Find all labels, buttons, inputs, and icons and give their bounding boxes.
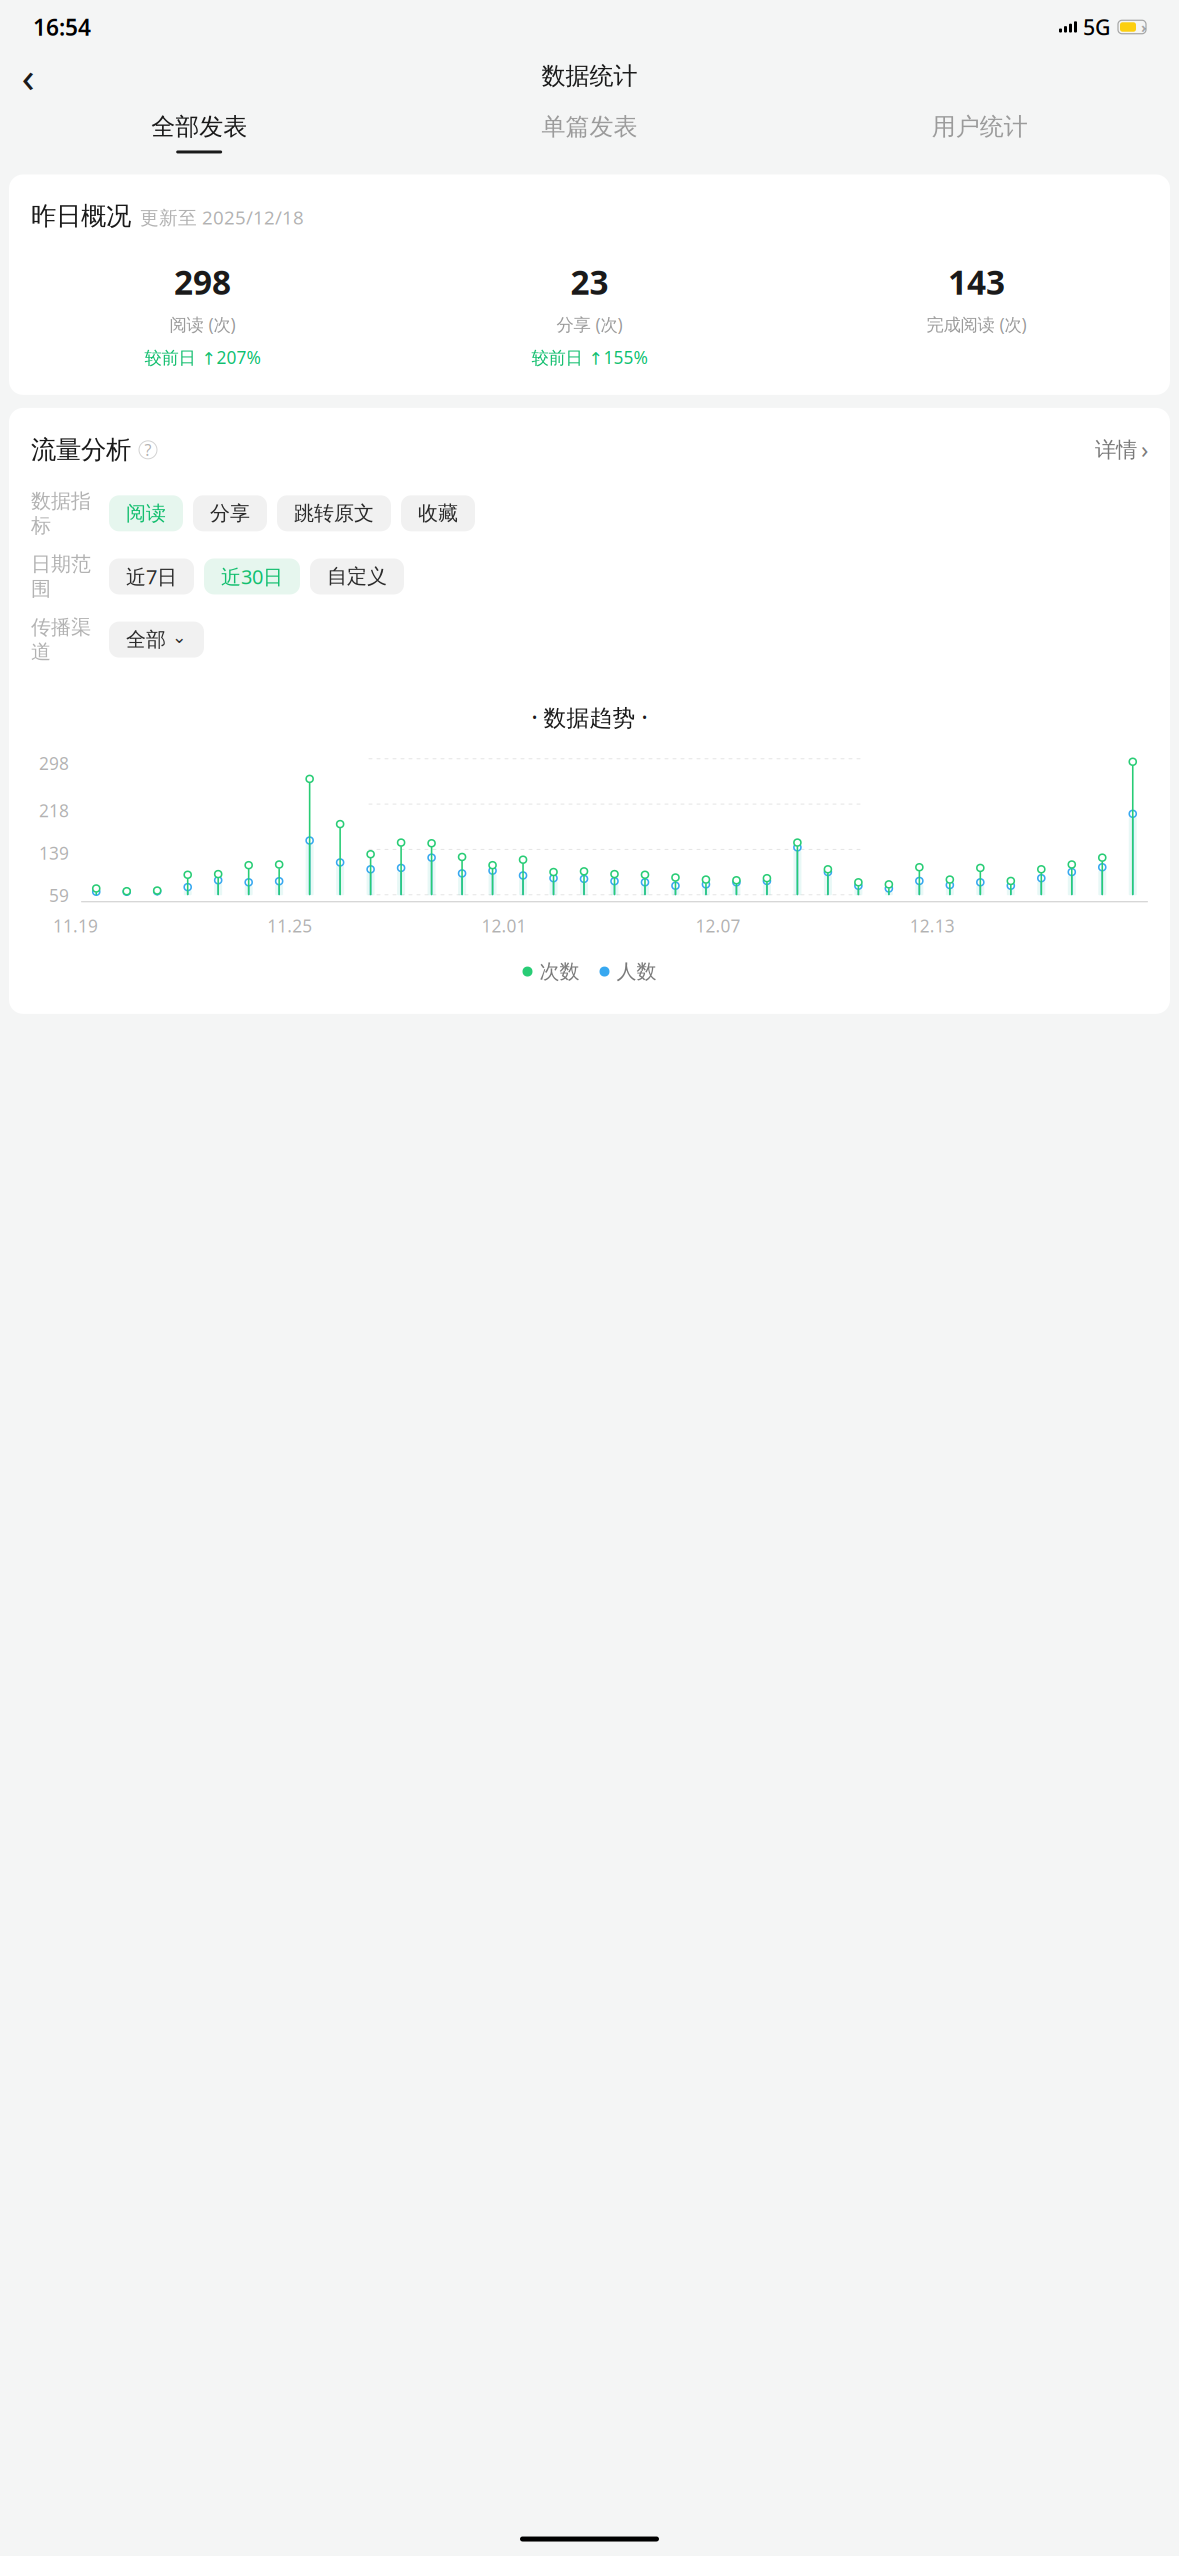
button[interactable]: 返回 (6, 54, 50, 98)
staticText: 收藏 (418, 501, 458, 526)
staticText: ⌄ (172, 627, 187, 647)
button[interactable]: 说明 (139, 441, 157, 459)
staticText: 218 (39, 799, 69, 822)
staticText: 完成阅读 (次) (926, 313, 1026, 336)
staticText: 日期范围 (31, 552, 91, 601)
staticText: 分享 (次) (556, 313, 622, 336)
staticText: ‹ (21, 48, 34, 104)
staticText: 阅读 (126, 501, 166, 526)
staticText: 11.25 (267, 914, 312, 937)
staticText: 昨日概况 (31, 200, 131, 232)
staticText: 5G (1083, 13, 1111, 41)
staticText: 流量分析 (31, 434, 131, 465)
staticText: › (1141, 17, 1146, 37)
staticText: 16:54 (33, 12, 91, 42)
staticText: 分享 (210, 501, 250, 526)
staticText: 更新至 2025/12/18 (140, 205, 304, 230)
staticText: 全部发表 (151, 112, 247, 141)
staticText: 59 (49, 884, 69, 907)
staticText: ? (144, 439, 151, 460)
staticText: 数据统计 (541, 61, 637, 91)
staticText: 传播渠道 (31, 615, 91, 664)
staticText: 详情 (1095, 437, 1137, 463)
button[interactable]: 详情 (1095, 433, 1148, 467)
button[interactable]: 近30日 (204, 558, 300, 594)
staticText: 单篇发表 (541, 112, 637, 141)
button[interactable]: 自定义 (310, 558, 404, 594)
button[interactable]: 跳转原文 (277, 495, 391, 531)
button[interactable]: 用户统计 (785, 112, 1175, 153)
staticText: 自定义 (327, 564, 387, 589)
staticText: 用户统计 (932, 112, 1028, 141)
staticText: › (1141, 433, 1148, 465)
staticText: 数据指标 (31, 489, 91, 538)
staticText: 143 (948, 260, 1005, 304)
button[interactable]: 单篇发表 (394, 112, 785, 153)
button[interactable]: 近7日 (109, 558, 194, 594)
staticText: 跳转原文 (294, 501, 374, 526)
staticText: 近30日 (221, 563, 283, 590)
button[interactable]: 收藏 (401, 495, 475, 531)
staticText: · 数据趋势 · (531, 702, 647, 732)
staticText: 较前日 ↑155% (531, 346, 647, 369)
button[interactable]: 全部发表 (4, 112, 394, 153)
staticText: 12.07 (696, 914, 741, 937)
staticText: 298 (39, 752, 69, 775)
staticText: 次数 (539, 959, 579, 984)
staticText: 139 (39, 841, 69, 864)
button[interactable]: 阅读 (109, 495, 183, 531)
staticText: 12.13 (910, 914, 955, 937)
button[interactable]: 分享 (193, 495, 267, 531)
staticText: 298 (174, 260, 231, 304)
staticText: 23 (570, 260, 608, 304)
staticText: 11.19 (53, 914, 98, 937)
staticText: 人数 (616, 959, 656, 984)
button[interactable]: 全部 (109, 622, 204, 658)
staticText: 近7日 (126, 563, 177, 590)
staticText: 较前日 ↑207% (144, 346, 260, 369)
staticText: 12.01 (481, 914, 526, 937)
staticText: 全部 (126, 627, 166, 652)
staticText: 阅读 (次) (169, 313, 235, 336)
